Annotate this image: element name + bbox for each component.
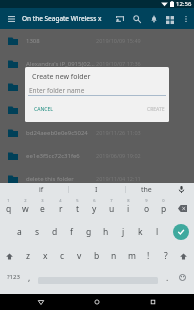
button[interactable]: 1 [0,197,17,219]
button[interactable]: ?123 [0,267,26,287]
button[interactable]: if [14,183,68,196]
button[interactable]: Back [26,294,56,310]
button[interactable]: 7 [103,197,120,219]
staticText: ! [147,250,150,262]
button[interactable]: x [37,245,54,267]
button[interactable]: f [63,221,80,243]
staticText: On the Seagate Wireless x [22,14,112,23]
staticText: . [166,272,169,284]
button[interactable]: a [11,221,28,243]
button[interactable]: 2 [17,197,34,219]
staticText: s [35,226,40,238]
button[interactable]: delete this folder [0,167,194,190]
button[interactable]: More options [177,8,194,29]
staticText: 9 [145,198,148,203]
button[interactable]: aaa [0,75,194,98]
staticText: 3 [41,198,44,203]
button[interactable]: 1308 [0,29,194,52]
staticText: Alexandra's iP_0915(02123) [26,60,95,68]
staticText: 1308 [26,37,95,45]
staticText: 6 [93,198,96,203]
button[interactable]: Emoji [172,267,192,287]
staticText: m [128,250,136,262]
button[interactable]: c [54,245,71,267]
button[interactable]: Voice input [170,183,192,196]
staticText: 2019/10/09 15:49 [96,37,141,44]
button[interactable]: Backspace [172,198,192,218]
button[interactable]: h [97,221,114,243]
button[interactable]: ? [157,245,174,267]
button[interactable]: z [19,245,36,267]
button[interactable]: Grid view [161,8,178,29]
staticText: 5 [76,198,79,203]
button[interactable]: s [29,221,46,243]
button[interactable]: Notifications [145,8,162,29]
staticText: e [40,203,45,215]
button[interactable]: m [123,245,140,267]
button[interactable]: bd24aeeb0e0e9c5024 [0,121,194,144]
staticText: x [43,250,48,262]
button[interactable]: g [80,221,97,243]
staticText: if [39,185,44,195]
staticText: i [127,203,130,215]
button[interactable]: Shift [0,246,19,266]
staticText: aaa [26,83,95,91]
button[interactable]: ee1e3f5cc72c31fe6 [0,144,194,167]
staticText: 8 [127,198,130,203]
staticText: CANCEL [34,106,53,113]
staticText: 0 [162,198,165,203]
button[interactable]: Enter [170,222,192,242]
button[interactable]: bbb [0,98,194,121]
staticText: bd24aeeb0e0e9c5024 [26,129,95,137]
button[interactable]: l [149,221,166,243]
button[interactable]: Shift [173,246,193,266]
staticText: 4 [59,198,62,203]
button[interactable]: 6 [86,197,103,219]
button[interactable]: n [105,245,122,267]
button[interactable]: 5 [69,197,86,219]
button[interactable]: v [71,245,88,267]
staticText: t [76,203,80,215]
staticText: 2 [24,198,27,203]
staticText: f [70,226,73,238]
button[interactable]: Search [128,8,145,29]
button[interactable]: 0 [155,197,172,219]
staticText: 1 [7,198,10,203]
staticText: o [144,203,150,215]
staticText: Create new folder [32,72,91,82]
staticText: ee1e3f5cc72c31fe6 [26,152,95,160]
button[interactable]: CREATE [142,102,169,116]
staticText: b [94,250,100,262]
button[interactable]: Cast [111,8,128,29]
button[interactable]: , [21,267,38,289]
button[interactable]: k [132,221,149,243]
button[interactable]: 4 [52,197,69,219]
button[interactable]: ! [140,245,157,267]
button[interactable]: d [46,221,63,243]
button[interactable]: Home [82,294,112,310]
button[interactable]: Recents [138,294,168,310]
button[interactable]: dir2 [0,190,194,213]
button[interactable]: b [88,245,105,267]
staticText: z [26,250,30,262]
button[interactable]: I [68,183,125,196]
button[interactable]: . [159,267,176,289]
button[interactable]: CANCEL [29,102,57,116]
button[interactable]: 3 [34,197,51,219]
staticText: CREATE [147,106,165,113]
staticText: v [77,250,82,262]
staticText: ?123 [7,273,20,281]
staticText: q [6,203,12,215]
button[interactable]: 9 [138,197,155,219]
button[interactable]: Alexandra's iP_0915(02123) [0,52,194,75]
button[interactable]: Menu [0,8,22,29]
button[interactable]: the [125,183,168,196]
staticText: ? [164,250,168,262]
staticText: n [111,250,117,262]
staticText: c [60,250,65,262]
button[interactable]: 8 [120,197,137,219]
button[interactable]: j [115,221,132,243]
